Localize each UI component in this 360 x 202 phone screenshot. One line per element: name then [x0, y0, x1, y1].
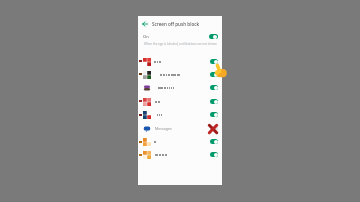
- button[interactable]: Toggle: [210, 152, 218, 157]
- staticText: On: [143, 34, 149, 40]
- button[interactable]: Toggle: [210, 139, 218, 144]
- other: Blocked: [208, 124, 218, 134]
- button[interactable]: Toggle: [210, 85, 218, 90]
- button[interactable]: On: [138, 30, 222, 43]
- button[interactable]: Toggle: [138, 55, 222, 68]
- staticText: When the app is blocked, notifications a…: [144, 42, 217, 46]
- staticText: Screen off push block: [152, 21, 200, 27]
- button[interactable]: Toggle: [210, 126, 218, 131]
- button[interactable]: Toggle: [209, 34, 218, 39]
- button[interactable]: Toggle: [138, 81, 222, 94]
- button[interactable]: Toggle: [138, 108, 222, 121]
- button[interactable]: Toggle: [210, 72, 218, 77]
- button[interactable]: Toggle: [138, 135, 222, 148]
- other: Tap here: [214, 63, 227, 78]
- button[interactable]: Toggle: [210, 112, 218, 117]
- button[interactable]: Messages: [138, 122, 222, 135]
- staticText: Messages: [155, 126, 172, 131]
- button[interactable]: Toggle: [210, 59, 218, 64]
- button[interactable]: Toggle: [138, 148, 222, 161]
- button[interactable]: Toggle: [138, 95, 222, 108]
- button[interactable]: Toggle: [210, 99, 218, 104]
- button[interactable]: Back: [140, 19, 150, 29]
- button[interactable]: Toggle: [138, 68, 222, 81]
